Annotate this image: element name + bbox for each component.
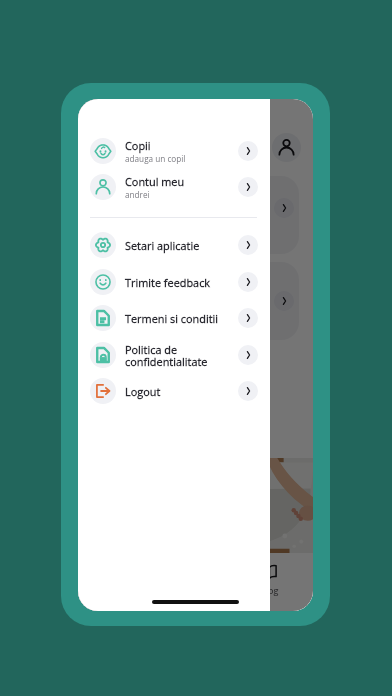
button[interactable]: Setari aplicatie — [78, 227, 270, 263]
button[interactable]: Politica de confidentialitate — [78, 337, 270, 373]
staticText: adauga un copil — [125, 153, 186, 164]
staticText: Buna, andrei — [94, 135, 178, 154]
staticText: Blog — [260, 584, 279, 596]
staticText: Setari aplicatie — [125, 238, 200, 253]
button[interactable]: Contul meu — [78, 169, 270, 205]
staticText: Contul meu — [125, 174, 185, 189]
staticText: Termeni si conditii — [125, 311, 219, 326]
button[interactable]: Copii — [78, 133, 270, 169]
button[interactable]: Sfaturi — [166, 555, 226, 611]
staticText: Copii — [125, 138, 151, 153]
button[interactable]: Termeni si conditii — [78, 300, 270, 336]
staticText: Politica de confidentialitate — [125, 342, 208, 369]
button[interactable]: Blog — [239, 555, 299, 611]
staticText: andrei — [125, 189, 150, 200]
button[interactable]: Logout — [78, 373, 270, 409]
staticText: Logout — [125, 384, 161, 399]
button[interactable]: Trimite feedback — [78, 264, 270, 300]
staticText: Trimite feedback — [125, 275, 211, 290]
